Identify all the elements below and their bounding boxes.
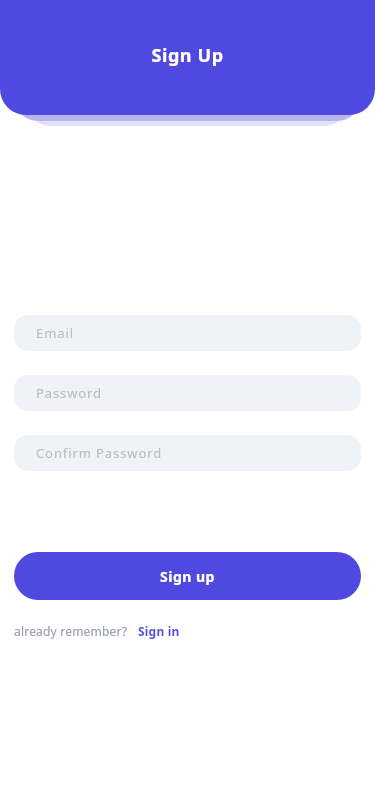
staticText: Email bbox=[36, 324, 74, 342]
button[interactable]: Sign up bbox=[14, 552, 361, 600]
staticText: already remember? bbox=[14, 623, 128, 639]
staticText: Sign Up bbox=[0, 43, 375, 68]
staticText: Sign in bbox=[138, 623, 180, 639]
staticText: Password bbox=[36, 384, 102, 402]
button[interactable]: Sign in bbox=[138, 623, 180, 639]
button[interactable]: Email bbox=[14, 315, 361, 351]
button[interactable]: Password bbox=[14, 375, 361, 411]
staticText: Sign up bbox=[160, 567, 215, 586]
button[interactable]: Confirm Password bbox=[14, 435, 361, 471]
staticText: Confirm Password bbox=[36, 444, 163, 462]
